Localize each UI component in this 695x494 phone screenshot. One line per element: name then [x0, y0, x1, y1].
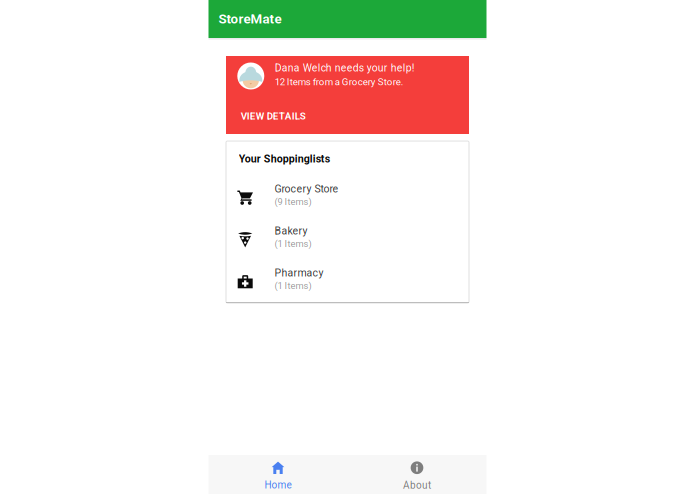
button[interactable]: Home: [208, 455, 347, 494]
staticText: About: [403, 479, 431, 491]
staticText: 12 Items from a Grocery Store.: [275, 76, 404, 88]
staticText: Your Shoppinglists: [239, 153, 330, 165]
staticText: VIEW DETAILS: [241, 110, 306, 122]
button[interactable]: Bakery: [226, 218, 469, 260]
button[interactable]: About: [347, 455, 486, 494]
staticText: Grocery Store: [274, 183, 338, 195]
staticText: Pharmacy: [274, 267, 323, 279]
button[interactable]: Grocery Store: [226, 176, 469, 218]
button[interactable]: Dana Welch needs your help!: [226, 56, 469, 134]
staticText: Bakery: [274, 225, 307, 237]
staticText: StoreMate: [218, 11, 281, 27]
button[interactable]: Pharmacy: [226, 260, 469, 302]
staticText: (1 Items): [274, 280, 311, 291]
staticText: Home: [264, 479, 291, 491]
staticText: Dana Welch needs your help!: [275, 62, 415, 74]
staticText: (9 Items): [274, 196, 311, 207]
staticText: (1 Items): [274, 238, 311, 249]
